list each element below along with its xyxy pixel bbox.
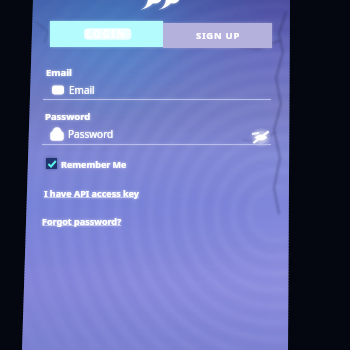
button[interactable]: Email [52, 83, 267, 97]
button[interactable]: Remember Me [46, 157, 127, 170]
button[interactable]: Show password [251, 127, 271, 147]
staticText: Password [68, 127, 114, 141]
staticText: Password [68, 127, 114, 141]
staticText: Email [69, 83, 95, 97]
other: Show password [251, 127, 271, 147]
staticText: SIGN UP [196, 29, 240, 42]
staticText: I have API access key [44, 187, 139, 199]
staticText: Remember Me [61, 158, 127, 170]
staticText: Email [46, 66, 72, 79]
staticText: Password [45, 110, 91, 123]
staticText: Forgot password? [42, 215, 122, 227]
button[interactable]: Password [50, 127, 250, 141]
staticText: Password [45, 110, 91, 123]
button[interactable]: Forgot password? [42, 215, 122, 227]
staticText: I have API access key [44, 187, 139, 199]
button[interactable]: I have API access key [44, 187, 139, 199]
staticText: Email [69, 83, 95, 97]
staticText: SIGN UP [196, 29, 240, 42]
staticText: LOGIN [86, 27, 127, 41]
button[interactable]: LOGIN [50, 21, 163, 47]
button[interactable]: SIGN UP [163, 23, 272, 48]
staticText: Forgot password? [42, 215, 122, 227]
staticText: Email [46, 66, 72, 79]
staticText: LOGIN [86, 27, 127, 41]
staticText: Remember Me [61, 158, 127, 170]
